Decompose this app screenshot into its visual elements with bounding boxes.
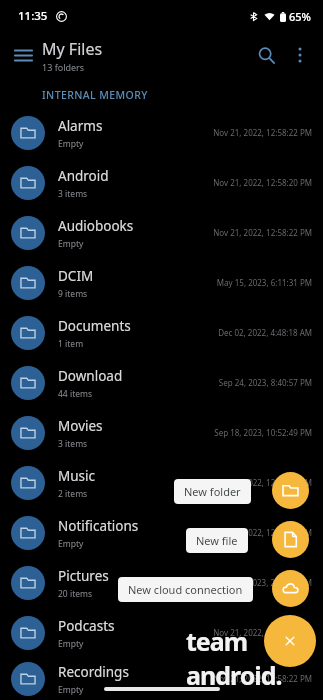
- staticText: Documents: [58, 317, 131, 335]
- button[interactable]: New cloud connection: [272, 570, 309, 607]
- staticText: May 15, 2023, 6:11:31 PM: [216, 277, 312, 288]
- button[interactable]: Documents: [0, 308, 323, 358]
- staticText: 3 items: [58, 438, 88, 450]
- staticText: 13 folders: [42, 61, 85, 73]
- staticText: New cloud connection: [128, 582, 243, 597]
- staticText: Recordings: [58, 663, 129, 681]
- staticText: New folder: [184, 484, 241, 499]
- staticText: Nov 21, 2022, 12:58:22 PM: [213, 627, 312, 638]
- staticText: Android: [58, 167, 109, 185]
- staticText: team: [186, 624, 248, 658]
- staticText: Music: [58, 467, 96, 485]
- button[interactable]: Alarms: [0, 108, 323, 158]
- staticText: DCIM: [58, 267, 94, 285]
- staticText: Pictures: [58, 567, 109, 585]
- button[interactable]: Pictures: [0, 558, 323, 608]
- staticText: Empty: [58, 538, 84, 550]
- staticText: Empty: [58, 138, 84, 150]
- staticText: Nov 21, 2022, 12:58:22 PM: [213, 227, 312, 238]
- button[interactable]: New file: [186, 528, 248, 553]
- staticText: 9 items: [58, 288, 88, 300]
- staticText: Notifications: [58, 517, 139, 535]
- button[interactable]: Audiobooks: [0, 208, 323, 258]
- button[interactable]: DCIM: [0, 258, 323, 308]
- button[interactable]: Podcasts: [0, 608, 323, 658]
- button[interactable]: New folder: [174, 479, 251, 504]
- staticText: Nov 21, 2022, 12:58:22 PM: [213, 673, 312, 684]
- staticText: New file: [196, 533, 238, 548]
- button[interactable]: New cloud connection: [118, 577, 253, 602]
- staticText: Empty: [58, 684, 84, 696]
- staticText: 11:35: [18, 8, 48, 24]
- staticText: My Files: [42, 38, 103, 60]
- button[interactable]: Android: [0, 158, 323, 208]
- staticText: Sep 18, 2023, 10:52:49 PM: [214, 427, 312, 438]
- staticText: Download: [58, 367, 123, 385]
- staticText: Nov 21, 2022, 12:58:20 PM: [213, 177, 312, 188]
- staticText: Dec 02, 2022, 4:48:18 AM: [218, 327, 312, 338]
- staticText: Podcasts: [58, 617, 115, 635]
- button[interactable]: More options: [283, 38, 317, 72]
- button[interactable]: Download: [0, 358, 323, 408]
- staticText: Sep 17, 2023, 2:04:11 AM: [218, 577, 312, 588]
- button[interactable]: New file: [272, 521, 309, 558]
- staticText: INTERNAL MEMORY: [42, 88, 148, 102]
- button[interactable]: Close menu: [264, 615, 316, 667]
- button[interactable]: Movies: [0, 408, 323, 458]
- staticText: Alarms: [58, 117, 103, 135]
- staticText: Nov 21, 2022, 12:58:22 PM: [213, 477, 312, 488]
- button[interactable]: Recordings: [0, 658, 323, 700]
- staticText: android.: [186, 658, 282, 692]
- staticText: 3 items: [58, 188, 88, 200]
- button[interactable]: Search: [249, 38, 283, 72]
- staticText: 1 item: [58, 338, 84, 350]
- staticText: Nov 21, 2022, 12:58:22 PM: [213, 527, 312, 538]
- button[interactable]: Notifications: [0, 508, 323, 558]
- staticText: Sep 24, 2023, 8:40:57 PM: [218, 377, 312, 388]
- staticText: 2 items: [58, 488, 88, 500]
- staticText: 20 items: [58, 588, 93, 600]
- staticText: Nov 21, 2022, 12:58:22 PM: [213, 127, 312, 138]
- button[interactable]: Music: [0, 458, 323, 508]
- staticText: 44 items: [58, 388, 93, 400]
- staticText: Audiobooks: [58, 217, 134, 235]
- staticText: Movies: [58, 417, 103, 435]
- staticText: Empty: [58, 638, 84, 650]
- button[interactable]: New folder: [272, 472, 309, 509]
- staticText: Empty: [58, 238, 84, 250]
- staticText: 65%: [289, 9, 311, 24]
- button[interactable]: Open navigation drawer: [8, 40, 38, 70]
